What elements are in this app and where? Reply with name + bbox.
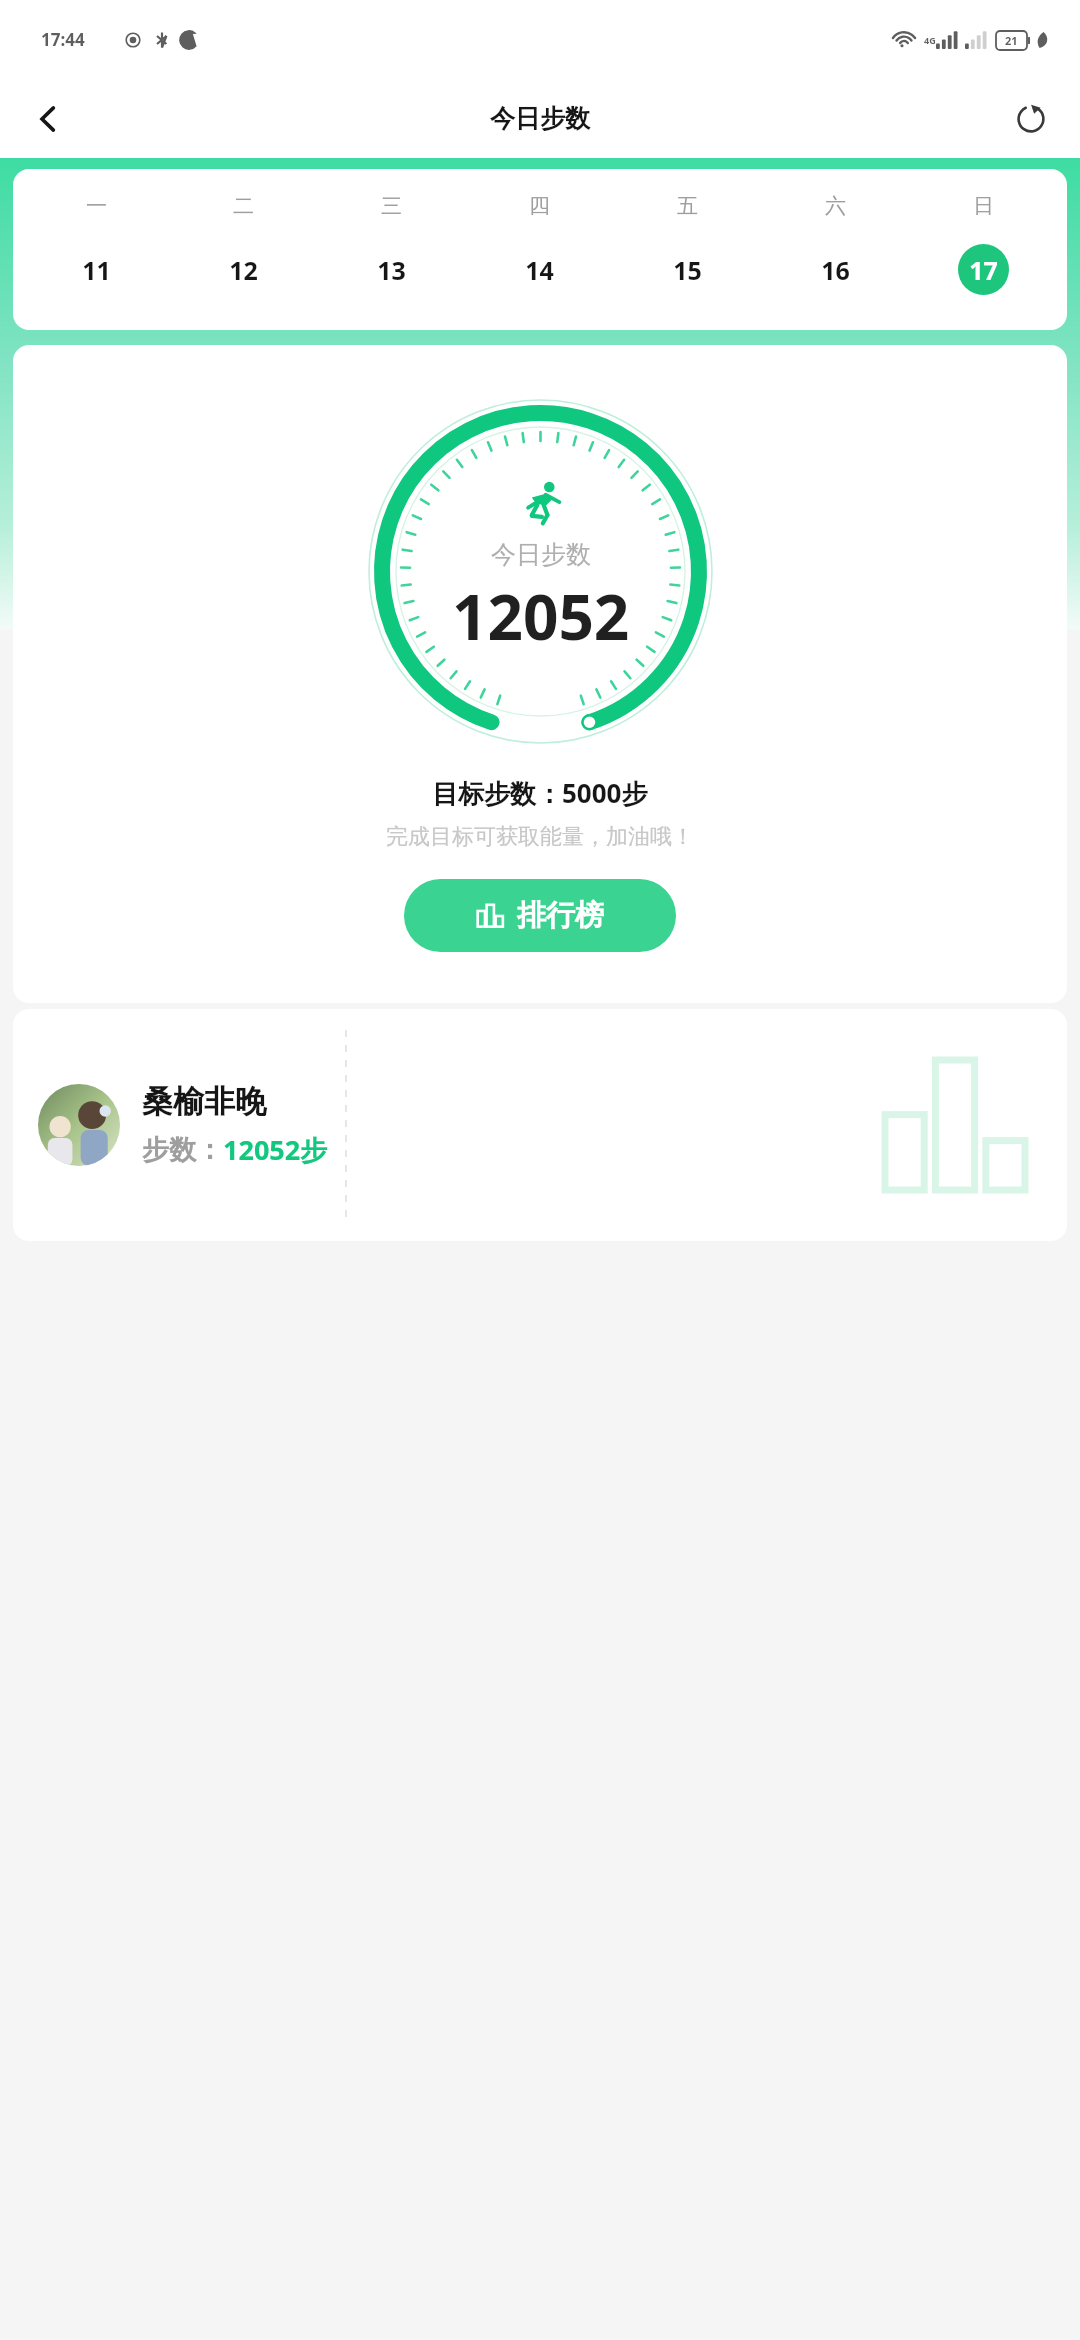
staticText: 三 [381,193,402,219]
button[interactable]: 14 [514,244,565,295]
button[interactable]: 12 [218,244,269,295]
staticText: 一 [86,193,107,219]
button[interactable]: 11 [71,244,122,295]
staticText: 完成目标可获取能量，加油哦！ [386,823,694,851]
button[interactable]: Refresh [1002,90,1060,148]
staticText: 15 [673,253,702,287]
staticText: 13 [377,253,406,287]
staticText: 17 [969,253,998,287]
staticText: 五 [677,193,698,219]
staticText: 桑榆非晚 [142,1082,266,1121]
button[interactable]: 桑榆非晚 [13,1009,1067,1241]
staticText: 四 [529,193,550,219]
staticText: 4G [924,34,936,46]
button[interactable]: Back [18,89,78,149]
staticText: 17:44 [41,28,85,51]
staticText: 目标步数：5000步 [432,775,648,811]
staticText: 12052 [452,574,630,658]
staticText: 排行榜 [517,897,604,934]
button[interactable]: 16 [810,244,861,295]
staticText: 今日步数 [491,539,591,570]
staticText: 21 [1005,33,1018,48]
staticText: 六 [825,193,846,219]
button[interactable]: 17 [958,244,1009,295]
staticText: 今日步数 [490,103,590,134]
staticText: 步数： [142,1133,223,1167]
button[interactable]: 15 [662,244,713,295]
staticText: 16 [821,253,850,287]
button[interactable]: 排行榜 [404,879,676,952]
staticText: 二 [233,193,254,219]
staticText: 14 [525,253,554,287]
staticText: 12 [229,253,258,287]
staticText: 11 [82,253,111,287]
staticText: 日 [973,193,994,219]
staticText: 12052步 [223,1131,328,1168]
button[interactable]: 13 [366,244,417,295]
